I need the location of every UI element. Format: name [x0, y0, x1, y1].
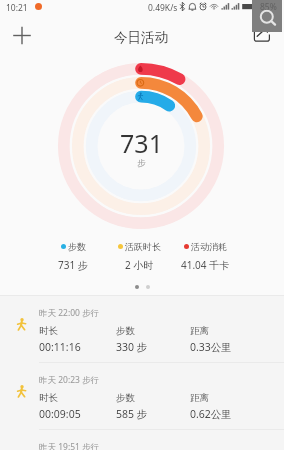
staticText: 731 步	[58, 258, 88, 272]
button[interactable]: Search	[252, 0, 282, 32]
staticText: 85%	[260, 1, 277, 13]
button[interactable]: 昨天 19:51 步行	[0, 430, 284, 450]
staticText: 0.33公里	[190, 340, 232, 354]
staticText: 今日活动	[114, 29, 168, 46]
staticText: 步数	[68, 241, 86, 252]
staticText: 步数	[116, 392, 135, 404]
staticText: 昨天 19:51 步行	[39, 441, 100, 450]
staticText: 0.62公里	[190, 407, 232, 421]
staticText: 10:21	[6, 2, 28, 14]
staticText: 时长	[39, 325, 58, 337]
staticText: 00:09:05	[39, 407, 81, 421]
staticText: 昨天 22:00 步行	[39, 307, 100, 319]
staticText: 41.04 千卡	[181, 258, 230, 272]
button[interactable]: 昨天 22:00 步行	[0, 296, 284, 363]
button[interactable]: Share	[251, 24, 273, 46]
button[interactable]: Add	[6, 19, 37, 50]
staticText: 活动消耗	[191, 241, 227, 252]
staticText: 330 步	[116, 340, 148, 354]
staticText: 昨天 20:23 步行	[39, 374, 100, 386]
staticText: 距离	[190, 325, 209, 337]
staticText: 2 小时	[125, 258, 154, 272]
staticText: 时长	[39, 392, 58, 404]
staticText: 活跃时长	[125, 241, 161, 252]
button[interactable]: 昨天 20:23 步行	[0, 363, 284, 430]
staticText: 00:11:16	[39, 340, 81, 354]
staticText: 585 步	[116, 407, 148, 421]
staticText: 步数	[116, 325, 135, 337]
staticText: 731	[120, 126, 163, 160]
staticText: 步	[137, 158, 146, 169]
staticText: 距离	[190, 392, 209, 404]
staticText: 0.49K/s	[148, 2, 178, 14]
